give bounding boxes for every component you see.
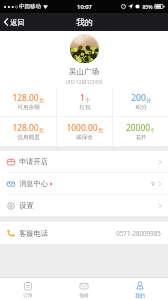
staticText: 元: [39, 127, 44, 133]
button[interactable]: 我的: [112, 278, 168, 300]
staticText: 分: [146, 97, 151, 103]
staticText: 我的: [76, 17, 93, 27]
staticText: 诚保金: [76, 134, 93, 141]
staticText: 85%: [142, 3, 153, 10]
staticText: 9: [151, 180, 155, 188]
button[interactable]: 128.00: [0, 117, 56, 146]
staticText: UID: 128812345X: [0, 79, 168, 85]
staticText: 报修: [79, 292, 89, 298]
staticText: 0571-28009985: [116, 229, 161, 237]
staticText: 个: [150, 127, 155, 133]
staticText: 花杆: [135, 134, 147, 141]
staticText: 可用余额: [17, 104, 40, 111]
staticText: 积分: [135, 104, 147, 111]
staticText: 128.00: [12, 92, 39, 103]
button[interactable]: 订单: [0, 278, 56, 300]
staticText: 200: [131, 92, 146, 103]
staticText: 128.00: [12, 122, 39, 133]
button[interactable]: 128.00: [0, 87, 56, 116]
staticText: 吴山广场: [0, 67, 168, 77]
button[interactable]: 200: [113, 87, 168, 116]
button[interactable]: 返回: [0, 13, 31, 31]
staticText: 元: [98, 127, 103, 133]
staticText: 设置: [19, 201, 34, 210]
button[interactable]: 设置: [0, 195, 168, 216]
staticText: 客服电话: [19, 229, 48, 238]
button[interactable]: 报修: [56, 278, 112, 300]
staticText: 个: [85, 97, 90, 103]
button[interactable]: 20000: [113, 117, 168, 146]
staticText: 订单: [23, 292, 33, 298]
button[interactable]: 1000.00: [57, 117, 112, 146]
staticText: 1: [80, 92, 85, 103]
staticText: 1000.00: [66, 122, 98, 133]
staticText: 20000: [126, 122, 150, 133]
button[interactable]: 1: [57, 87, 112, 116]
staticText: 我的: [135, 292, 145, 298]
staticText: 中国移动: [19, 3, 41, 10]
staticText: 消息中心: [19, 179, 48, 188]
button[interactable]: 消息中心: [0, 173, 168, 194]
staticText: 信用额度: [17, 134, 40, 141]
staticText: 10:07: [77, 3, 92, 11]
button[interactable]: User avatar: [70, 34, 99, 63]
staticText: 红包: [79, 104, 91, 111]
staticText: 元: [39, 97, 44, 103]
button[interactable]: 客服电话: [0, 222, 168, 244]
staticText: 返回: [10, 18, 25, 27]
staticText: 申请开店: [19, 157, 48, 166]
button[interactable]: 申请开店: [0, 151, 168, 172]
